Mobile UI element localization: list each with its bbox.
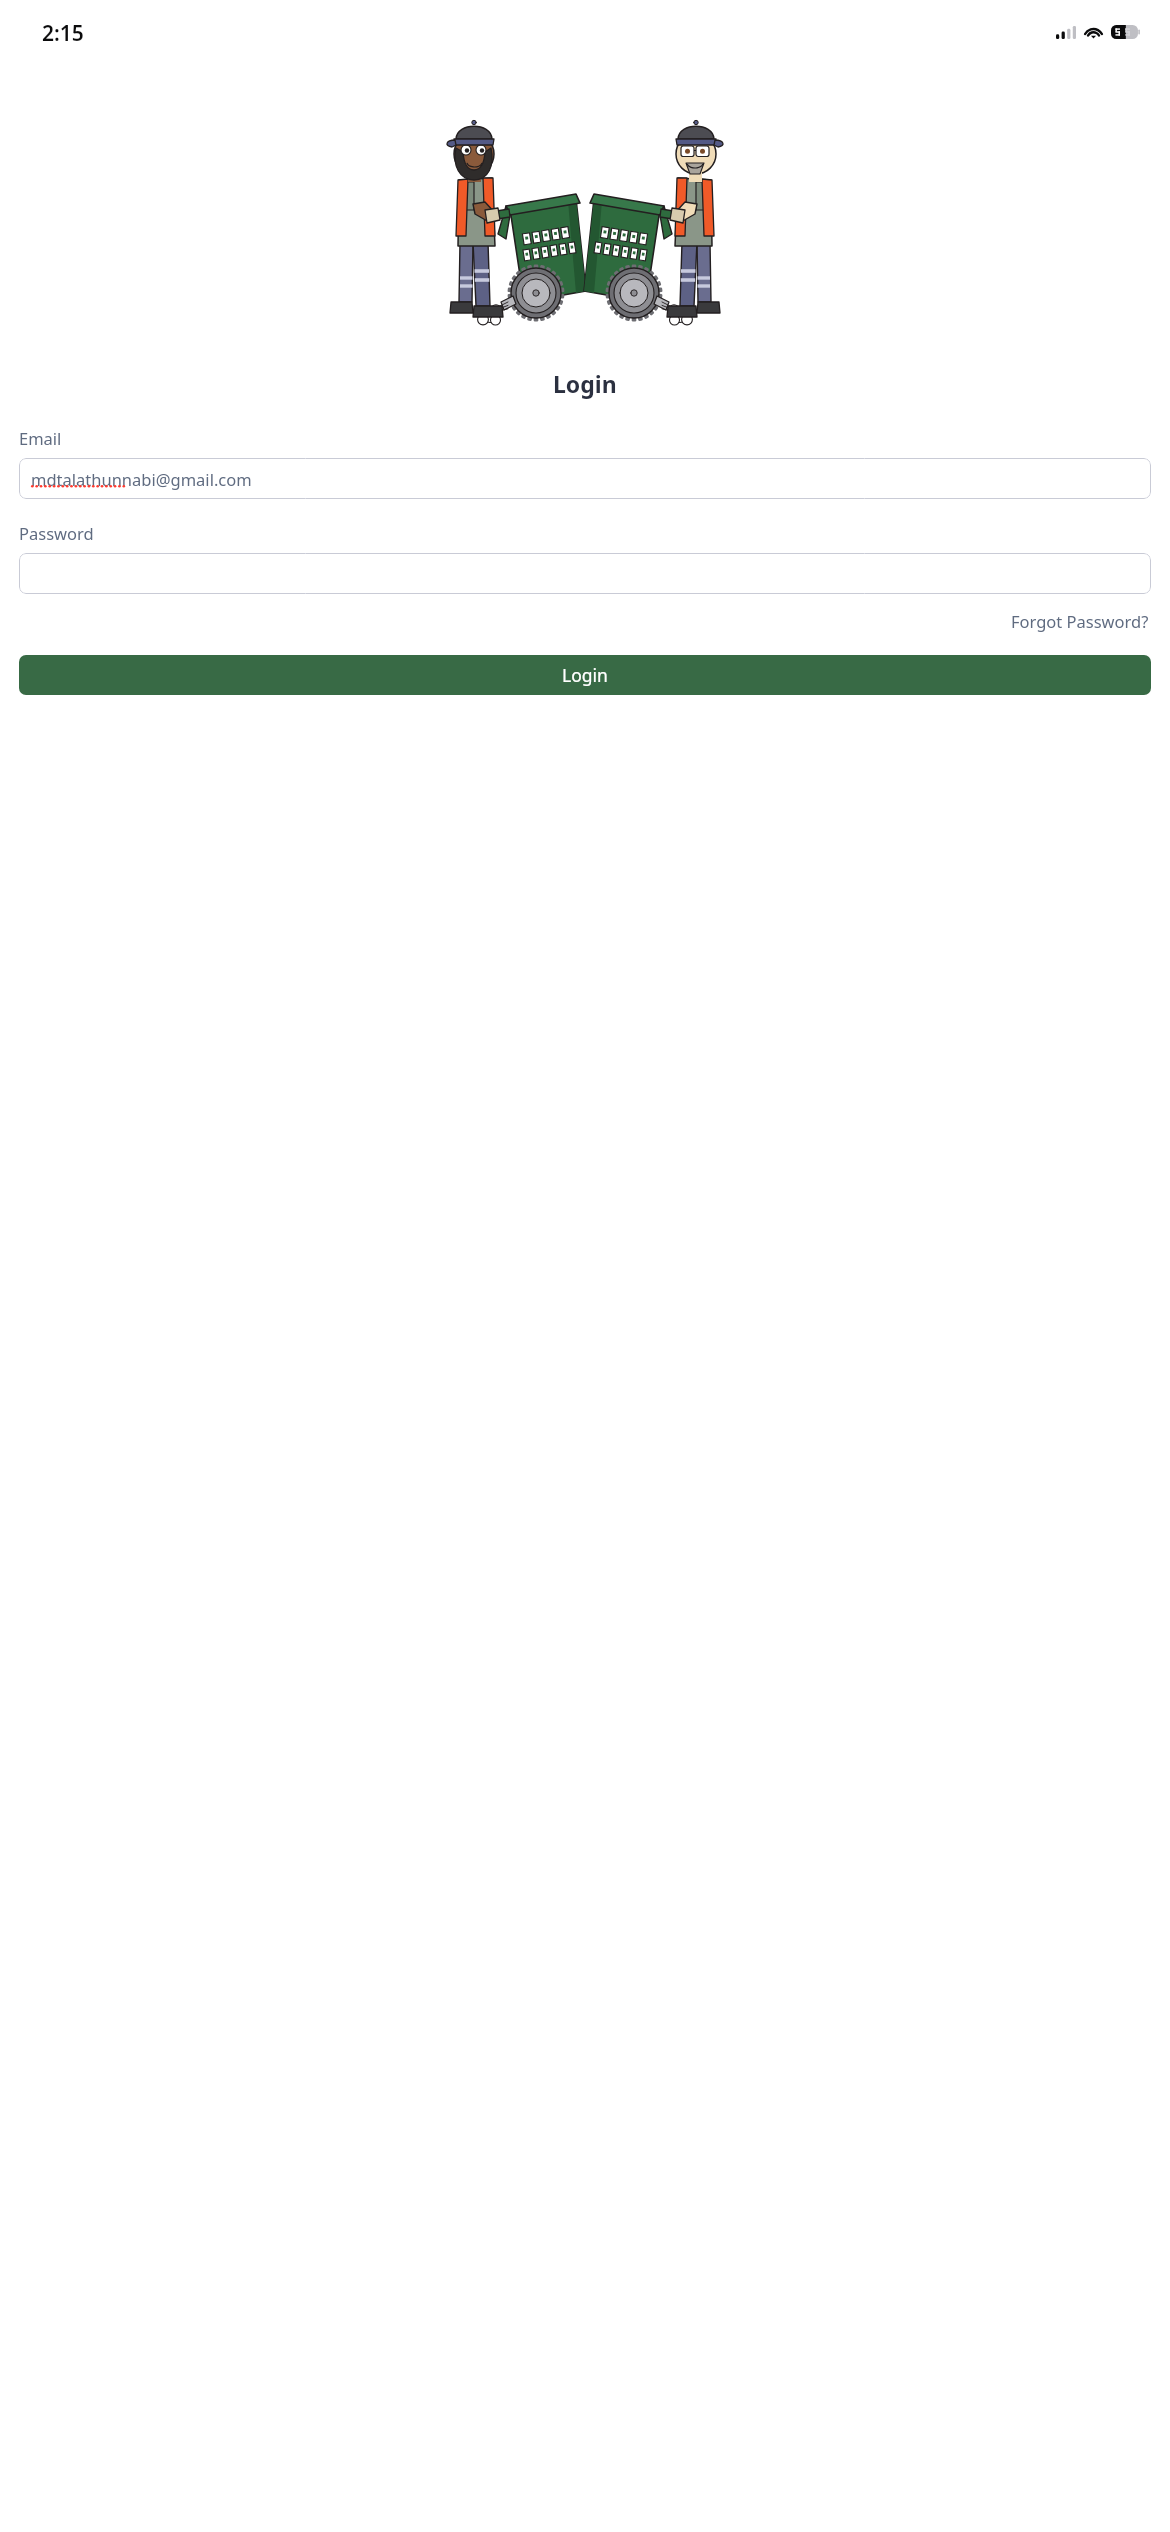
staticText: Forgot Password? (1011, 610, 1149, 632)
staticText: Email (19, 427, 62, 449)
staticText: 2:15 (42, 19, 84, 48)
button[interactable]: Password input (19, 553, 1151, 594)
staticText: mdtalathunnabi@gmail.com (31, 468, 252, 490)
staticText: Login (562, 663, 608, 687)
button[interactable]: Forgot Password? (1009, 606, 1151, 636)
button[interactable]: Email input (19, 458, 1151, 499)
staticText: Password (19, 522, 94, 544)
staticText: Login (553, 368, 617, 399)
button[interactable]: Login (19, 655, 1151, 695)
